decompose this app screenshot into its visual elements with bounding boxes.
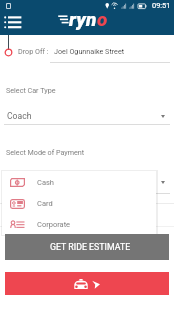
- staticText: Card: [37, 199, 53, 208]
- staticText: 09:51: [152, 1, 171, 10]
- button[interactable]: Corporate: [2, 214, 156, 235]
- staticText: Select Mode of Payment: [6, 148, 85, 156]
- button[interactable]: Book a ride: [5, 272, 169, 295]
- button[interactable]: GET RIDE ESTIMATE: [5, 234, 169, 260]
- staticText: Cash: [37, 178, 54, 187]
- staticText: Drop Off :: [18, 47, 49, 55]
- staticText: Corporate: [37, 220, 71, 229]
- staticText: o: [97, 8, 108, 30]
- staticText: ryn: [69, 8, 97, 30]
- button[interactable]: Card: [2, 193, 156, 214]
- staticText: Joel Ogunnaike Street: [54, 47, 125, 55]
- staticText: Coach: [7, 111, 32, 121]
- button[interactable]: Cash: [2, 172, 156, 193]
- staticText: GET RIDE ESTIMATE: [50, 242, 131, 252]
- button[interactable]: Open navigation menu: [3, 13, 24, 31]
- staticText: Select Car Type: [6, 86, 56, 94]
